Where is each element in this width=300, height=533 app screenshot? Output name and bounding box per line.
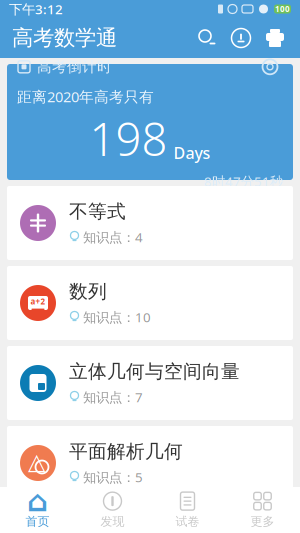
staticText: 100 — [275, 4, 290, 14]
staticText: Days — [173, 142, 210, 163]
staticText: 198 — [89, 108, 167, 168]
button[interactable]: 打印 — [258, 21, 292, 55]
staticText: 8时47分51秒 — [204, 172, 283, 190]
staticText: 发现 — [100, 514, 124, 529]
button[interactable]: 不等式 — [7, 186, 293, 260]
button[interactable]: ⌂ — [0, 491, 75, 529]
button[interactable]: 搜索 — [190, 21, 224, 55]
staticText: 不等式 — [69, 200, 126, 223]
button[interactable]: 下载 — [224, 21, 258, 55]
button[interactable]: a+2 — [7, 266, 293, 340]
staticText: 函数与导数 — [69, 520, 164, 533]
button[interactable]: 函数与导数 — [7, 506, 293, 533]
staticText: 平面解析几何 — [69, 440, 183, 463]
staticText: 知识点：10 — [83, 308, 151, 326]
staticText: 立体几何与空间向量 — [69, 360, 240, 383]
staticText: 试卷 — [175, 514, 199, 529]
staticText: 下午3:12 — [9, 0, 63, 18]
button[interactable]: 试卷 — [150, 491, 225, 529]
button[interactable]: △ — [7, 426, 293, 500]
staticText: a+2 — [30, 296, 45, 307]
staticText: 高考数学通 — [12, 25, 117, 51]
staticText: 首页 — [25, 514, 49, 529]
staticText: △ — [28, 449, 45, 474]
staticText: 距离2020年高考只有 — [17, 87, 154, 106]
staticText: 知识点：4 — [83, 228, 143, 246]
button[interactable]: 发现 — [75, 491, 150, 529]
staticText: 更多 — [250, 514, 274, 529]
button[interactable]: 立体几何与空间向量 — [7, 346, 293, 420]
staticText: ⌂ — [27, 484, 48, 518]
staticText: 知识点：7 — [83, 388, 143, 406]
button[interactable]: 设置 — [257, 54, 283, 80]
staticText: 高考倒计时 — [37, 58, 112, 76]
staticText: 知识点：5 — [83, 468, 143, 486]
staticText: 数列 — [69, 280, 107, 303]
button[interactable]: 更多 — [225, 491, 300, 529]
